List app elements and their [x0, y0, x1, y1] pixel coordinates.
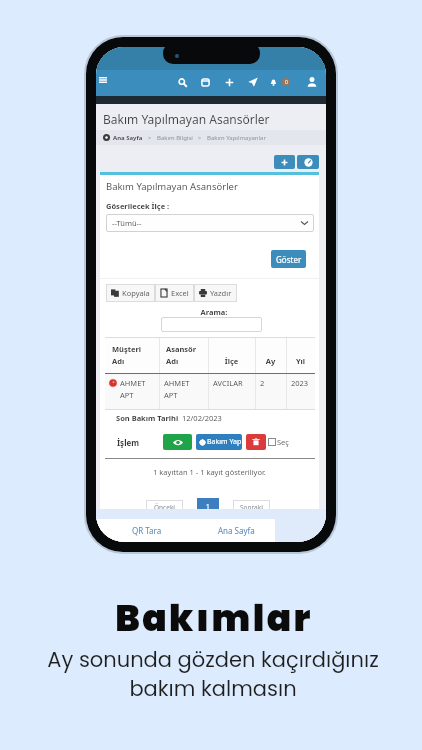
button[interactable]: QR Tara [96, 519, 198, 542]
button[interactable]: Excel [155, 284, 194, 302]
button[interactable]: 1 [197, 498, 219, 510]
staticText: > [198, 134, 202, 141]
staticText: Müşteri Adı [112, 344, 142, 367]
button[interactable]: Önceki [146, 500, 183, 510]
button[interactable]: Profile [303, 73, 321, 91]
staticText: Yıl [286, 356, 315, 366]
staticText: 2 [260, 378, 265, 388]
button[interactable]: Bakım Yap [196, 434, 242, 450]
staticText: Ana Sayfa [113, 134, 143, 142]
staticText: Bakım Bilgisi [157, 134, 193, 142]
staticText: 2023 [291, 378, 309, 388]
button[interactable]: --Tümü-- [106, 214, 314, 232]
staticText: Ay [255, 356, 286, 366]
staticText: Kopyala [122, 288, 150, 298]
staticText: Ay sonunda gözden kaçırdığınız bakım kal… [2, 645, 422, 703]
staticText: Excel [171, 288, 189, 298]
button[interactable]: Calendar [196, 73, 214, 91]
staticText: Ana Sayfa [218, 525, 255, 536]
button[interactable]: Search [173, 73, 191, 91]
staticText: 1 [206, 502, 210, 510]
staticText: Sonraki [240, 503, 263, 510]
staticText: Göserilecek İlçe : [106, 201, 170, 211]
button[interactable]: Add record [274, 155, 295, 169]
button[interactable]: Sonraki [233, 500, 270, 510]
staticText: --Tümü-- [112, 218, 142, 228]
button[interactable]: Search field [161, 317, 262, 332]
staticText: Bakım Yapılmayan Asansörler [106, 180, 238, 193]
staticText: 0 [285, 79, 288, 86]
staticText: Asansör Adı [166, 344, 197, 367]
staticText: 12/02/2023 [182, 413, 222, 423]
staticText: Seç [277, 437, 289, 447]
button[interactable]: Kopyala [106, 284, 155, 302]
button[interactable]: Menu [96, 73, 110, 87]
button[interactable]: Göster [271, 250, 306, 268]
button[interactable]: Delete [246, 434, 266, 450]
staticText: QR Tara [132, 525, 162, 536]
button[interactable]: Send [244, 73, 262, 91]
button[interactable]: Yazdır [194, 284, 237, 302]
staticText: Göster [276, 254, 302, 265]
staticText: > [148, 134, 152, 141]
button[interactable]: View [163, 434, 192, 450]
staticText: Bakımlar [3, 593, 422, 643]
button[interactable]: Ana Sayfa [198, 519, 275, 542]
staticText: Yazdır [210, 288, 232, 298]
button[interactable]: Notifications [264, 73, 282, 91]
button[interactable]: Seç [268, 437, 289, 447]
button[interactable]: Add [220, 73, 238, 91]
staticText: Bakım Yapılmayanlar [207, 134, 266, 142]
staticText: Bakım Yap [207, 437, 242, 447]
button[interactable]: Dashboard [297, 155, 319, 169]
staticText: AHMET APT [164, 378, 190, 401]
staticText: Önceki [154, 503, 176, 510]
staticText: Arama: [161, 307, 267, 317]
staticText: Son Bakım Tarihi [116, 413, 179, 423]
staticText: AVCILAR [213, 378, 243, 388]
staticText: Bakım Yapılmayan Asansörler [103, 111, 270, 127]
staticText: 1 kayıttan 1 - 1 kayıt gösteriliyor. [100, 467, 319, 477]
staticText: İlçe [208, 356, 255, 366]
staticText: AHMET APT [120, 378, 146, 401]
staticText: İşlem [117, 437, 140, 448]
